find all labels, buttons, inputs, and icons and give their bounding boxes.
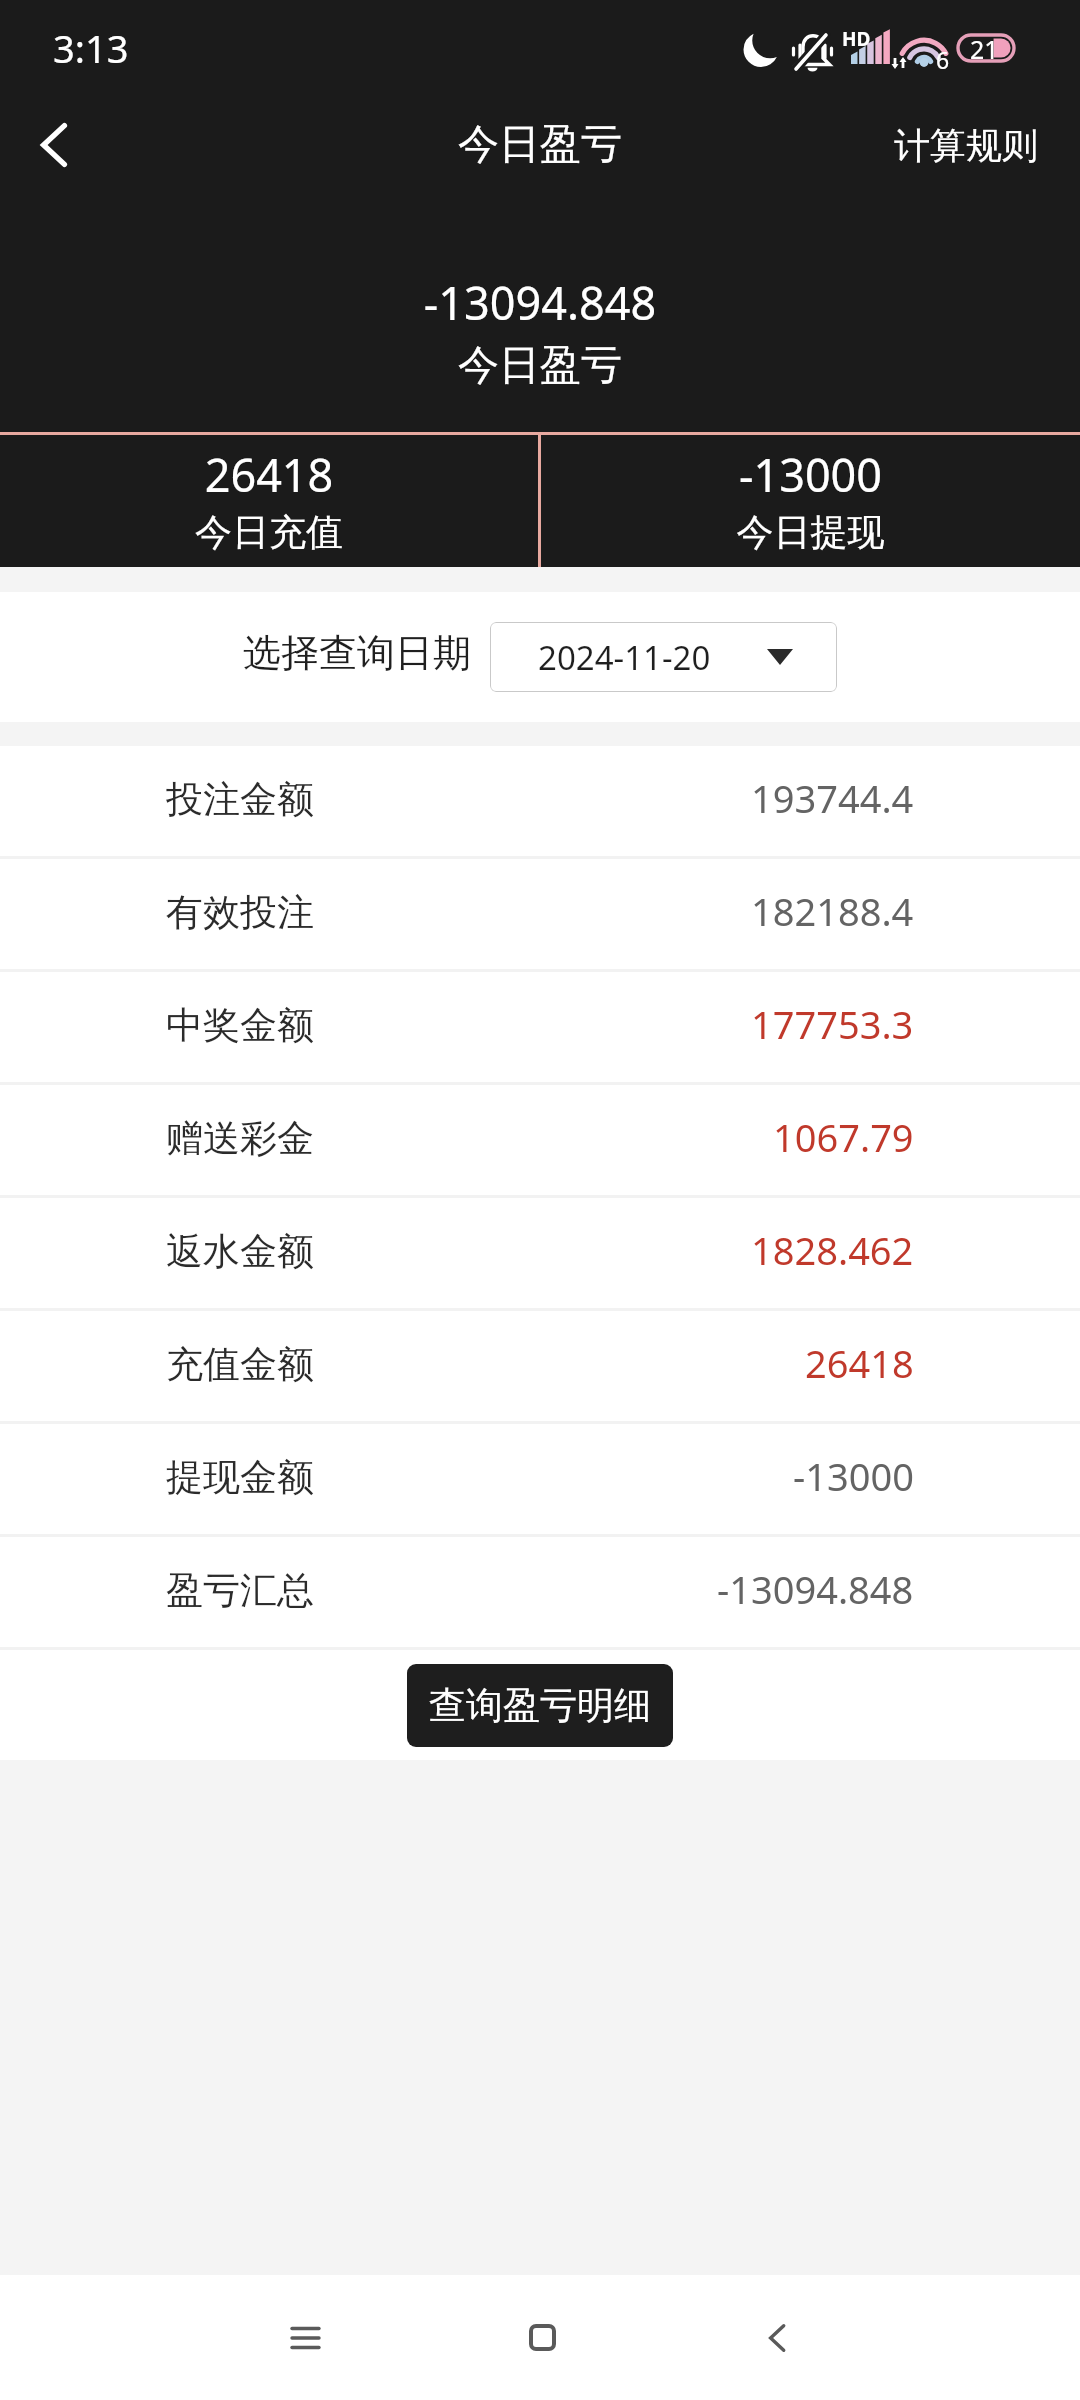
button[interactable]: Home: [482, 2275, 602, 2400]
staticText: 3:13: [53, 22, 129, 74]
button[interactable]: 盈亏汇总: [0, 1537, 1080, 1647]
staticText: 有效投注: [166, 889, 314, 936]
staticText: 26418: [805, 1337, 914, 1389]
staticText: 1828.462: [751, 1224, 914, 1276]
staticText: -13094.848: [717, 1563, 914, 1615]
staticText: -13094.848: [0, 272, 1080, 333]
button[interactable]: 投注金额: [0, 746, 1080, 856]
staticText: 今日盈亏: [458, 119, 622, 171]
staticText: -13000: [541, 444, 1080, 505]
staticText: 1067.79: [773, 1111, 914, 1163]
staticText: 返水金额: [166, 1228, 314, 1275]
staticText: 177753.3: [751, 998, 914, 1050]
staticText: 查询盈亏明细: [429, 1682, 651, 1729]
staticText: 中奖金额: [166, 1002, 314, 1049]
button[interactable]: 有效投注: [0, 859, 1080, 969]
button[interactable]: 中奖金额: [0, 972, 1080, 1082]
staticText: 选择查询日期: [243, 629, 471, 677]
button[interactable]: Recent apps: [245, 2275, 365, 2400]
button[interactable]: 赠送彩金: [0, 1085, 1080, 1195]
button[interactable]: 查询盈亏明细: [407, 1664, 673, 1747]
staticText: 赠送彩金: [166, 1115, 314, 1162]
button[interactable]: Back: [0, 91, 108, 199]
staticText: 2024-11-20: [538, 635, 711, 680]
staticText: 182188.4: [751, 885, 914, 937]
staticText: 充值金额: [166, 1341, 314, 1388]
button[interactable]: Back: [717, 2275, 837, 2400]
staticText: 提现金额: [166, 1454, 314, 1501]
button[interactable]: 充值金额: [0, 1311, 1080, 1421]
staticText: -13000: [793, 1450, 914, 1502]
staticText: 盈亏汇总: [166, 1567, 314, 1614]
button[interactable]: 2024-11-20: [490, 622, 837, 692]
staticText: 6: [936, 44, 950, 75]
staticText: 193744.4: [751, 772, 914, 824]
staticText: 今日盈亏: [0, 340, 1080, 392]
button[interactable]: 计算规则: [852, 101, 1080, 190]
staticText: 投注金额: [166, 776, 314, 823]
staticText: HD: [842, 26, 871, 52]
button[interactable]: 返水金额: [0, 1198, 1080, 1308]
button[interactable]: 26418: [0, 435, 538, 567]
staticText: 26418: [0, 444, 538, 505]
button[interactable]: 提现金额: [0, 1424, 1080, 1534]
staticText: 今日充值: [0, 509, 538, 556]
staticText: 今日提现: [541, 509, 1080, 556]
staticText: 21: [970, 32, 999, 66]
staticText: 计算规则: [894, 123, 1038, 168]
button[interactable]: -13000: [541, 435, 1080, 567]
